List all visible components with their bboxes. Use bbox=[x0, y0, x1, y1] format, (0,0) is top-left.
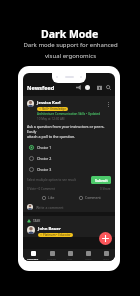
button[interactable]: Choice 3 bbox=[27, 164, 111, 175]
staticText: Courses bbox=[47, 257, 57, 260]
button[interactable]: Like bbox=[27, 193, 69, 202]
staticText: Architecture Communication Skills • Upda… bbox=[37, 112, 101, 116]
button[interactable]: Calendar bbox=[96, 84, 103, 91]
staticText: Submit bbox=[95, 178, 108, 183]
button[interactable]: More bbox=[97, 249, 115, 261]
staticText: Jessica Karl bbox=[37, 100, 61, 106]
button[interactable]: Submit bbox=[91, 176, 111, 184]
staticText: Chat bbox=[67, 257, 73, 260]
staticText: Like bbox=[48, 195, 55, 200]
staticText: Newsfeed bbox=[27, 84, 55, 91]
button[interactable]: Choice 2 bbox=[27, 153, 111, 164]
staticText: Choice 2 bbox=[37, 156, 52, 161]
staticText: Comment bbox=[85, 195, 101, 200]
staticText: Newsfeed bbox=[27, 257, 39, 260]
staticText: Alerts bbox=[85, 257, 92, 260]
staticText: Dark mode support for enhanced visual er… bbox=[23, 41, 118, 60]
staticText: Choice 3 bbox=[37, 167, 52, 172]
staticText: John Bauer bbox=[38, 226, 61, 232]
staticText: Select multiple option to see result bbox=[27, 178, 76, 182]
button[interactable]: Profile bbox=[84, 84, 91, 91]
button[interactable]: Choice 1 bbox=[27, 142, 111, 153]
staticText: 0 Share bbox=[100, 187, 111, 191]
button[interactable]: Search bbox=[105, 84, 112, 91]
staticText: TASK bbox=[33, 219, 41, 223]
staticText: ⚡ Skill • Knowledge bbox=[39, 107, 66, 111]
button[interactable]: Announcements bbox=[75, 84, 82, 91]
button[interactable]: Courses bbox=[42, 249, 61, 261]
staticText: ⚡ Platinum • Educator bbox=[40, 233, 71, 237]
button[interactable]: Chat bbox=[61, 249, 79, 261]
button[interactable]: Newsfeed bbox=[23, 249, 42, 261]
staticText: 10 May at 12:30 AM bbox=[37, 117, 65, 121]
button[interactable]: More options bbox=[105, 100, 111, 108]
staticText: Ask a question from your instructors or … bbox=[27, 124, 111, 139]
button[interactable]: Comment bbox=[69, 193, 111, 202]
staticText: Dark Mode bbox=[41, 27, 99, 41]
button[interactable]: Create post bbox=[99, 232, 112, 245]
staticText: Write a comment bbox=[36, 205, 64, 210]
staticText: 0 Vote • 0 Comment bbox=[27, 187, 55, 191]
staticText: More bbox=[103, 257, 109, 260]
staticText: Choice 1 bbox=[37, 145, 52, 150]
button[interactable]: Alerts bbox=[79, 249, 97, 261]
